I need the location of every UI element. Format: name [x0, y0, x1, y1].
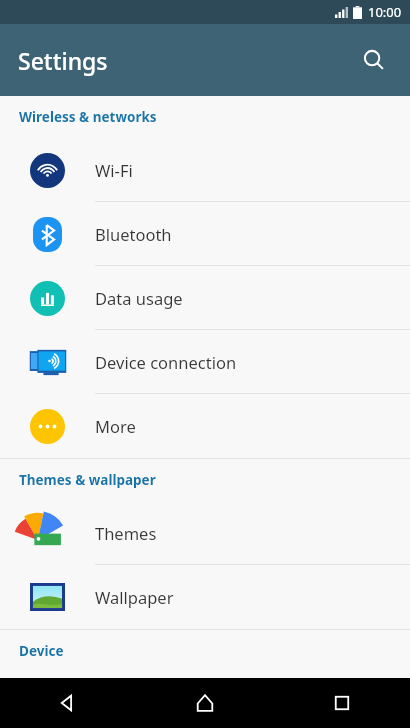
staticText: Wallpaper: [95, 586, 174, 608]
staticText: Themes & wallpaper: [19, 471, 156, 489]
staticText: Device connection: [95, 351, 237, 373]
staticText: Device: [19, 642, 64, 660]
button[interactable]: Search: [350, 36, 398, 84]
button[interactable]: Home: [136, 678, 273, 728]
button[interactable]: Wi-Fi: [0, 138, 410, 202]
staticText: Wireless & networks: [19, 108, 157, 126]
staticText: More: [95, 415, 136, 437]
staticText: Settings: [18, 45, 108, 76]
button[interactable]: Themes: [0, 501, 410, 565]
staticText: Wi-Fi: [95, 159, 133, 181]
staticText: Themes: [95, 522, 157, 544]
button[interactable]: Wallpaper: [0, 565, 410, 629]
staticText: Data usage: [95, 287, 183, 309]
button[interactable]: More: [0, 394, 410, 458]
button[interactable]: Recents: [273, 678, 410, 728]
button[interactable]: Data usage: [0, 266, 410, 330]
button[interactable]: Back: [0, 678, 136, 728]
staticText: Bluetooth: [95, 223, 172, 245]
staticText: 10:00: [368, 3, 402, 21]
button[interactable]: Device connection: [0, 330, 410, 394]
button[interactable]: Bluetooth: [0, 202, 410, 266]
